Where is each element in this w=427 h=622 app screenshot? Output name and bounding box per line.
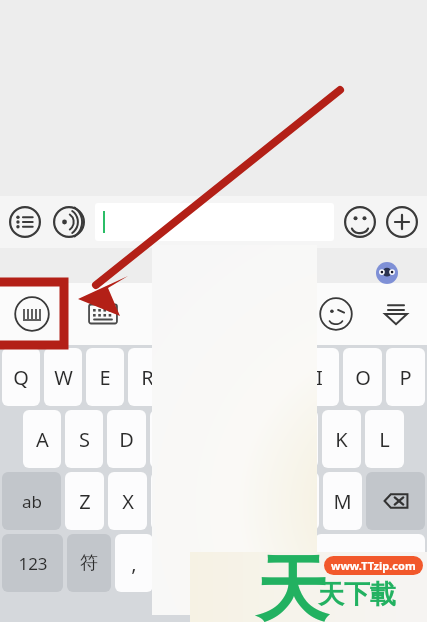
staticText: A (36, 426, 49, 453)
staticText: E (99, 364, 111, 391)
button[interactable] (157, 534, 311, 592)
staticText: I (316, 364, 323, 391)
button[interactable] (315, 534, 425, 592)
staticText: ab (22, 490, 42, 513)
button[interactable]: More (384, 204, 420, 240)
button[interactable] (95, 203, 334, 241)
button[interactable]: Q (2, 348, 40, 406)
staticText: K (335, 426, 348, 453)
button[interactable]: O (343, 348, 382, 406)
button[interactable]: Backspace (366, 472, 425, 530)
button[interactable]: E (86, 348, 124, 406)
button[interactable]: Input method (14, 296, 50, 332)
button[interactable]: Z (65, 472, 104, 530)
staticText: P (399, 364, 412, 391)
button[interactable]: X (108, 472, 147, 530)
button[interactable]: 符 (67, 534, 111, 592)
button[interactable]: ab (2, 472, 61, 530)
button[interactable]: W (44, 348, 82, 406)
button[interactable]: A (23, 410, 61, 468)
button[interactable]: J (279, 410, 318, 468)
button[interactable]: , (115, 534, 153, 592)
button[interactable]: Hide keyboard (379, 297, 413, 331)
button[interactable]: 123 (2, 534, 63, 592)
staticText: , (131, 550, 137, 577)
button[interactable]: Voice input (51, 204, 87, 240)
staticText: S (79, 426, 90, 453)
staticText: Q (13, 364, 29, 391)
staticText: 123 (18, 552, 48, 575)
button[interactable]: Menu (7, 204, 43, 240)
staticText: 符 (80, 552, 98, 575)
button[interactable]: K (322, 410, 361, 468)
button[interactable]: P (386, 348, 425, 406)
button[interactable]: R (128, 348, 167, 406)
staticText: www.TTzip.com (331, 558, 416, 573)
button[interactable]: M (323, 472, 362, 530)
staticText: 天 (256, 545, 328, 622)
button[interactable]: S (65, 410, 103, 468)
staticText: L (379, 426, 390, 453)
button[interactable]: L (365, 410, 404, 468)
staticText: 天下載 (318, 578, 396, 611)
button[interactable]: I (300, 348, 339, 406)
staticText: Z (79, 488, 91, 515)
staticText: R (141, 364, 154, 391)
button[interactable]: Emoji (342, 204, 378, 240)
button[interactable]: D (107, 410, 146, 468)
button[interactable]: Stickers (319, 297, 353, 331)
staticText: O (355, 364, 371, 391)
staticText: X (122, 488, 134, 515)
staticText: W (54, 364, 73, 391)
staticText: M (333, 488, 352, 515)
button[interactable]: Keyboard layout (86, 297, 120, 331)
staticText: D (119, 426, 134, 453)
button[interactable]: N (280, 472, 319, 530)
